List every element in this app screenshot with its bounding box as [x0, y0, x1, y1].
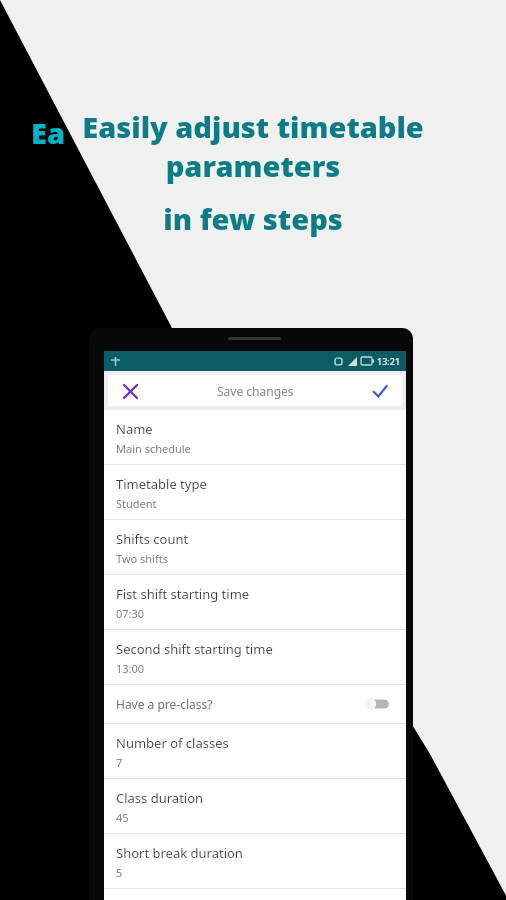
staticText: Short break duration: [116, 844, 243, 862]
staticText: Number of classes: [116, 734, 229, 752]
staticText: Second shift starting time: [116, 640, 273, 658]
button[interactable]: Class duration: [104, 779, 406, 834]
staticText: 7: [116, 755, 123, 770]
staticText: 5: [116, 865, 123, 880]
button[interactable]: Save: [367, 378, 393, 404]
button[interactable]: Second shift starting time: [104, 630, 406, 685]
button[interactable]: Have a pre-class?: [104, 685, 406, 724]
staticText: Fist shift starting time: [116, 585, 250, 603]
staticText: Save changes: [217, 383, 294, 399]
staticText: Main schedule: [116, 441, 191, 456]
button[interactable]: Shifts count: [104, 520, 406, 575]
staticText: Class duration: [116, 789, 204, 807]
staticText: Ea: [31, 113, 65, 152]
staticText: 45: [116, 810, 129, 825]
staticText: Name: [116, 420, 153, 438]
button[interactable]: Short break duration: [104, 834, 406, 889]
staticText: Have a pre-class?: [116, 696, 213, 712]
button[interactable]: Timetable type: [104, 465, 406, 520]
staticText: Student: [116, 496, 157, 511]
staticText: in few steps: [163, 199, 343, 238]
button[interactable]: Fist shift starting time: [104, 575, 406, 630]
button[interactable]: Name: [104, 410, 406, 465]
staticText: 07:30: [116, 606, 145, 621]
button[interactable]: Close: [117, 378, 143, 404]
staticText: 13:21: [377, 355, 401, 367]
staticText: Timetable type: [116, 475, 207, 493]
staticText: 13:00: [116, 661, 145, 676]
staticText: Two shifts: [116, 551, 168, 566]
staticText: Shifts count: [116, 530, 189, 548]
button[interactable]: Number of classes: [104, 724, 406, 779]
staticText: Easily adjust timetable parameters: [0, 107, 506, 185]
